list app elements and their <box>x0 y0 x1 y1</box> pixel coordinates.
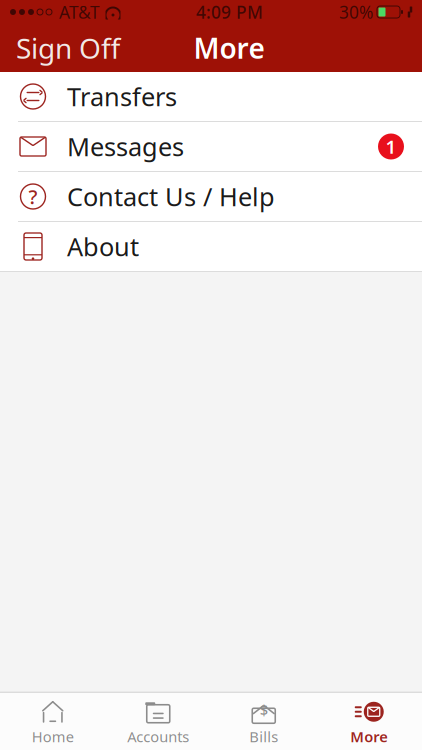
staticText: $ <box>260 700 268 719</box>
staticText: Contact Us / Help <box>67 180 275 213</box>
button[interactable]: ? <box>0 172 422 222</box>
staticText: AT&T <box>59 0 100 23</box>
button[interactable]: $ <box>211 693 316 750</box>
staticText: ? <box>28 183 37 210</box>
button[interactable]: Transfers <box>0 72 422 122</box>
staticText: Bills <box>249 727 278 746</box>
staticText: 30% <box>339 0 373 23</box>
staticText: More <box>193 29 264 67</box>
staticText: More <box>350 727 388 746</box>
staticText: Accounts <box>127 727 189 746</box>
button[interactable]: More <box>316 693 422 750</box>
staticText: 1 <box>385 134 396 159</box>
button[interactable]: Home <box>0 693 105 750</box>
button[interactable]: Messages <box>0 122 422 172</box>
staticText: Home <box>32 727 74 746</box>
button[interactable]: Sign Off <box>0 21 120 75</box>
staticText: About <box>67 230 139 263</box>
staticText: Sign Off <box>16 29 120 67</box>
button[interactable]: About <box>0 222 422 272</box>
staticText: Transfers <box>67 80 177 113</box>
button[interactable]: Accounts <box>105 693 211 750</box>
staticText: Messages <box>67 130 184 163</box>
staticText: 4:09 PM <box>196 0 263 23</box>
